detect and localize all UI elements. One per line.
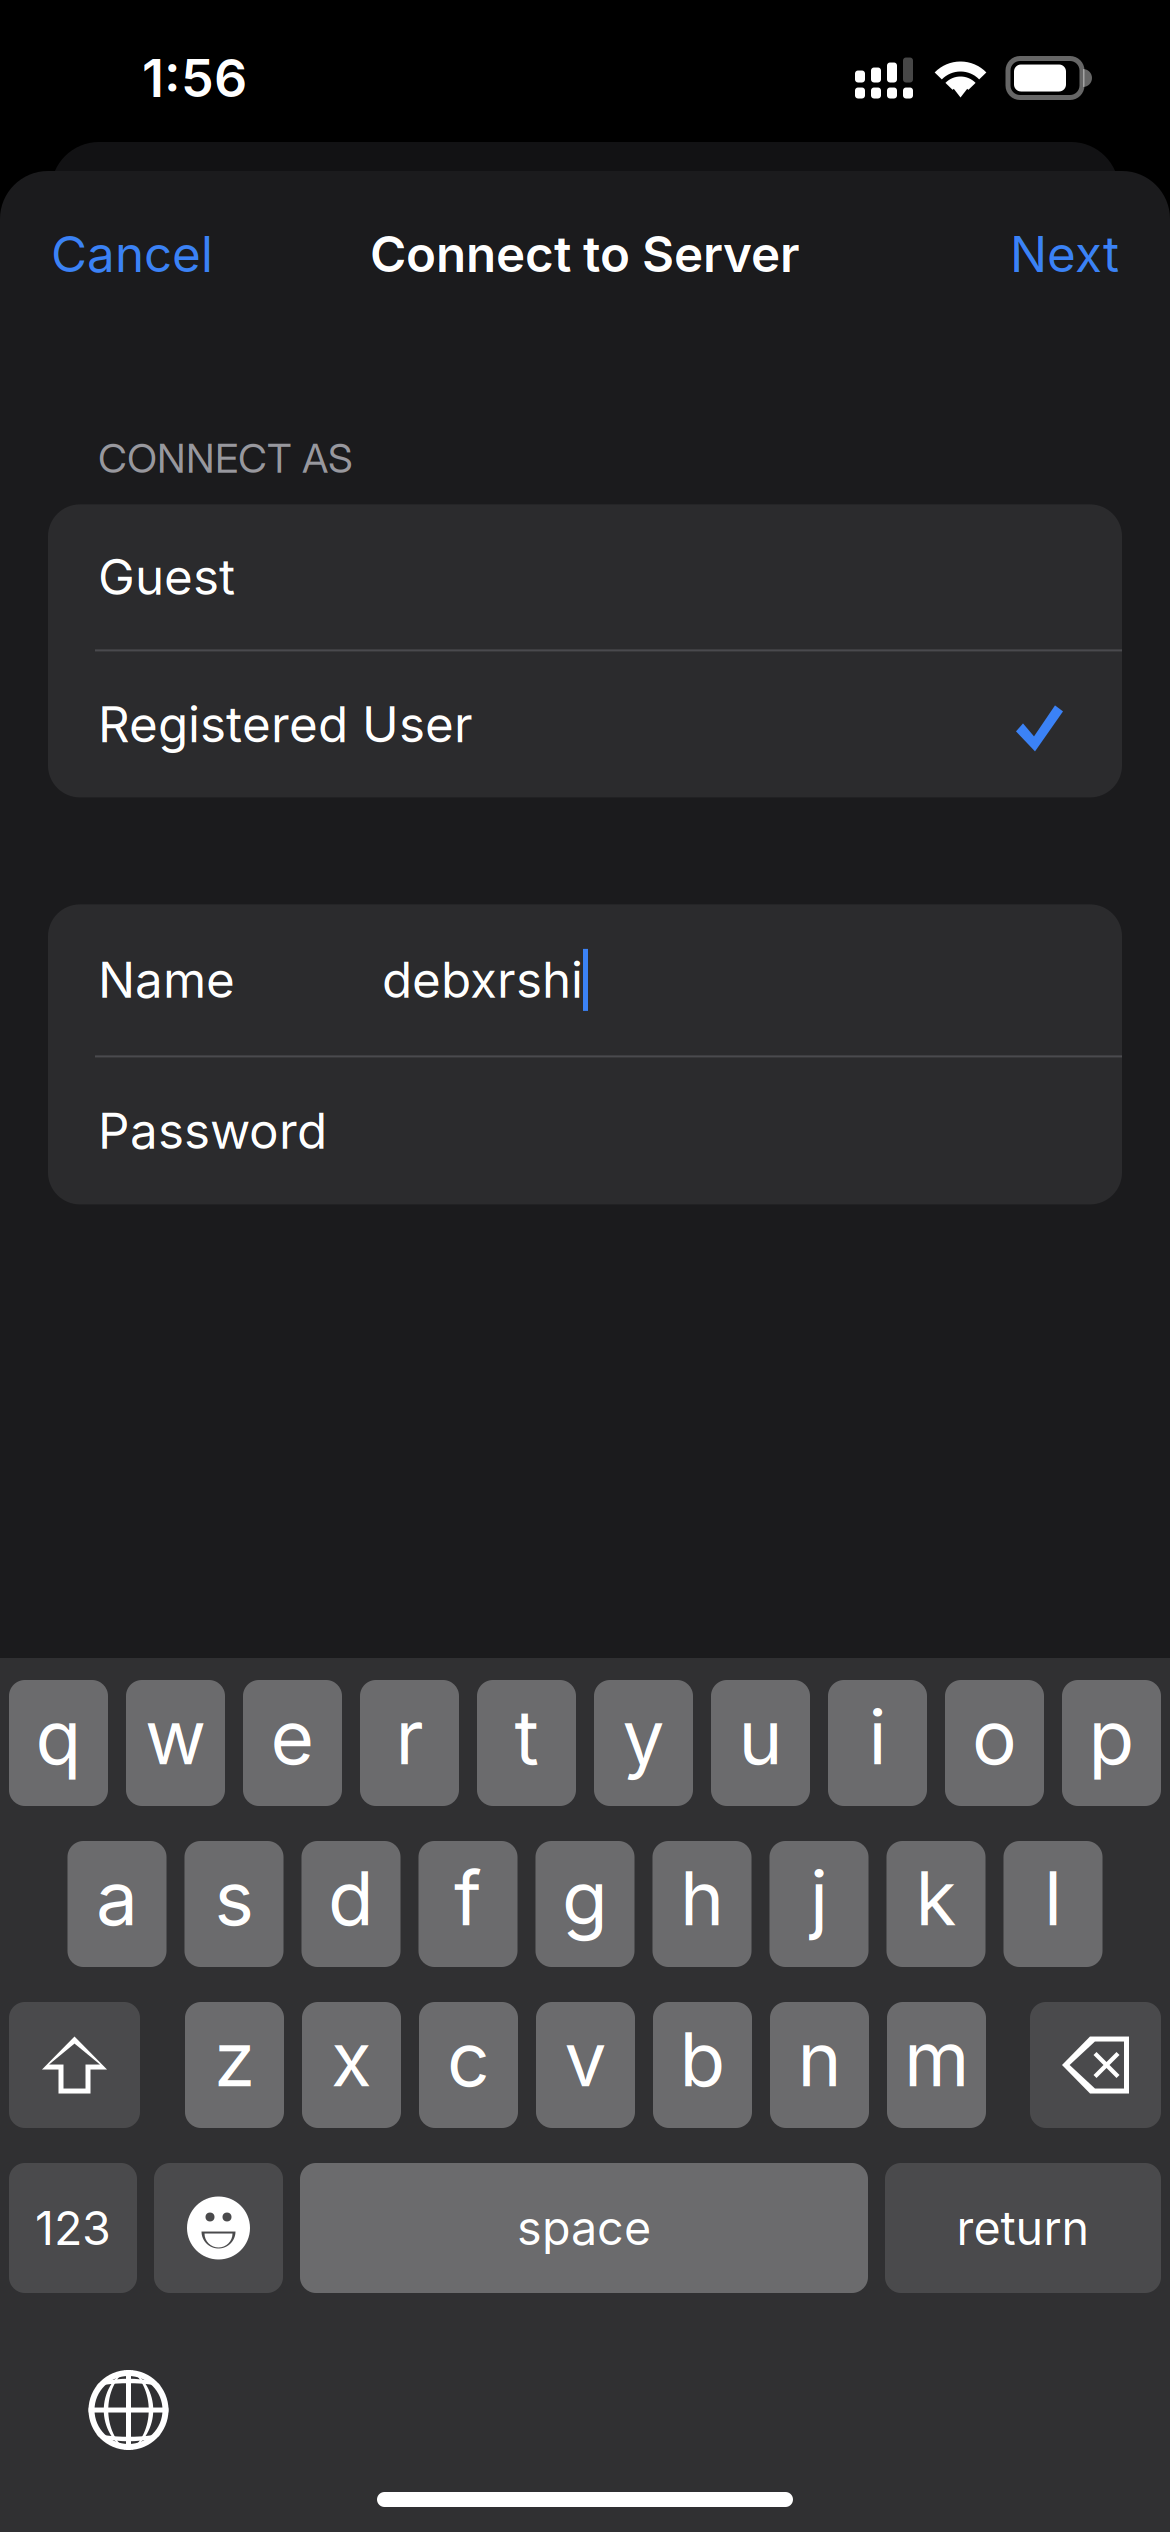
- staticText: CONNECT AS: [98, 434, 353, 482]
- button[interactable]: Shift: [9, 2002, 140, 2128]
- button[interactable]: o: [945, 1680, 1044, 1806]
- staticText: n: [797, 2014, 841, 2104]
- button[interactable]: g: [535, 1841, 634, 1967]
- staticText: y: [622, 1692, 664, 1782]
- staticText: l: [1044, 1853, 1062, 1943]
- button[interactable]: Delete: [1030, 2002, 1161, 2128]
- button[interactable]: space: [300, 2163, 868, 2293]
- staticText: return: [956, 2200, 1089, 2256]
- staticText: d: [328, 1853, 374, 1943]
- button[interactable]: j: [769, 1841, 868, 1967]
- button[interactable]: 123: [9, 2163, 137, 2293]
- button[interactable]: f: [418, 1841, 517, 1967]
- button[interactable]: m: [887, 2002, 986, 2128]
- staticText: Name: [98, 950, 235, 1010]
- staticText: Registered User: [98, 695, 473, 754]
- button[interactable]: Cancel: [41, 198, 223, 310]
- button[interactable]: Next keyboard: [64, 2360, 193, 2460]
- staticText: a: [96, 1853, 138, 1943]
- staticText: p: [1088, 1692, 1134, 1782]
- button[interactable]: Next: [1000, 198, 1129, 310]
- staticText: g: [562, 1853, 608, 1943]
- staticText: h: [680, 1853, 724, 1943]
- staticText: i: [868, 1692, 886, 1782]
- button[interactable]: l: [1003, 1841, 1102, 1967]
- button[interactable]: h: [652, 1841, 751, 1967]
- button[interactable]: k: [886, 1841, 985, 1967]
- staticText: j: [810, 1853, 828, 1943]
- button[interactable]: u: [711, 1680, 810, 1806]
- staticText: c: [447, 2014, 490, 2104]
- staticText: Connect to Server: [370, 224, 800, 284]
- staticText: space: [517, 2200, 651, 2256]
- staticText: e: [270, 1692, 314, 1782]
- button[interactable]: p: [1062, 1680, 1161, 1806]
- button[interactable]: Guest: [48, 504, 1122, 649]
- button[interactable]: i: [828, 1680, 927, 1806]
- button[interactable]: c: [419, 2002, 518, 2128]
- button[interactable]: s: [184, 1841, 283, 1967]
- staticText: o: [972, 1692, 1017, 1782]
- staticText: Guest: [98, 547, 235, 607]
- button[interactable]: Emoji: [154, 2163, 283, 2293]
- staticText: 123: [35, 2200, 111, 2256]
- button[interactable]: Registered User: [48, 651, 1122, 797]
- button[interactable]: e: [243, 1680, 342, 1806]
- staticText: 1:56: [142, 46, 247, 109]
- staticText: k: [915, 1853, 956, 1943]
- button[interactable]: w: [126, 1680, 225, 1806]
- button[interactable]: b: [653, 2002, 752, 2128]
- staticText: b: [679, 2014, 725, 2104]
- staticText: x: [331, 2014, 372, 2104]
- staticText: r: [395, 1692, 423, 1782]
- staticText: w: [145, 1692, 206, 1782]
- button[interactable]: a: [67, 1841, 166, 1967]
- button[interactable]: v: [536, 2002, 635, 2128]
- staticText: debxrshi: [382, 950, 583, 1010]
- staticText: z: [214, 2014, 255, 2104]
- staticText: v: [564, 2014, 606, 2104]
- button[interactable]: r: [360, 1680, 459, 1806]
- staticText: Next: [1010, 224, 1119, 284]
- button[interactable]: t: [477, 1680, 576, 1806]
- button[interactable]: x: [302, 2002, 401, 2128]
- button[interactable]: y: [594, 1680, 693, 1806]
- staticText: Password: [98, 1101, 327, 1161]
- staticText: s: [214, 1853, 253, 1943]
- staticText: q: [35, 1692, 81, 1782]
- staticText: m: [904, 2014, 969, 2104]
- staticText: Cancel: [51, 224, 213, 284]
- button[interactable]: q: [9, 1680, 108, 1806]
- button[interactable]: return: [885, 2163, 1161, 2293]
- button[interactable]: n: [770, 2002, 869, 2128]
- button[interactable]: d: [301, 1841, 400, 1967]
- staticText: u: [738, 1692, 782, 1782]
- staticText: f: [454, 1853, 482, 1943]
- staticText: t: [514, 1692, 538, 1782]
- button[interactable]: z: [185, 2002, 284, 2128]
